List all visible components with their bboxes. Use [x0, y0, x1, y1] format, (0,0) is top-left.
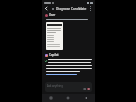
button[interactable]: Menu [50, 6, 55, 11]
button[interactable]: Recents [42, 94, 59, 102]
button[interactable]: Back [44, 6, 49, 11]
staticText: Diagnose Candidate [56, 7, 87, 11]
button[interactable]: Send [87, 88, 90, 90]
button[interactable]: Document preview [46, 22, 63, 50]
staticText: User [49, 13, 56, 17]
button[interactable]: More options [88, 6, 93, 11]
button[interactable]: Attach [83, 88, 86, 90]
button[interactable]: Back [77, 94, 95, 102]
staticText: Ask anything [47, 84, 63, 88]
button[interactable]: Ask anything [45, 82, 92, 92]
staticText: Copilot [49, 53, 59, 57]
button[interactable]: Home [59, 94, 77, 102]
